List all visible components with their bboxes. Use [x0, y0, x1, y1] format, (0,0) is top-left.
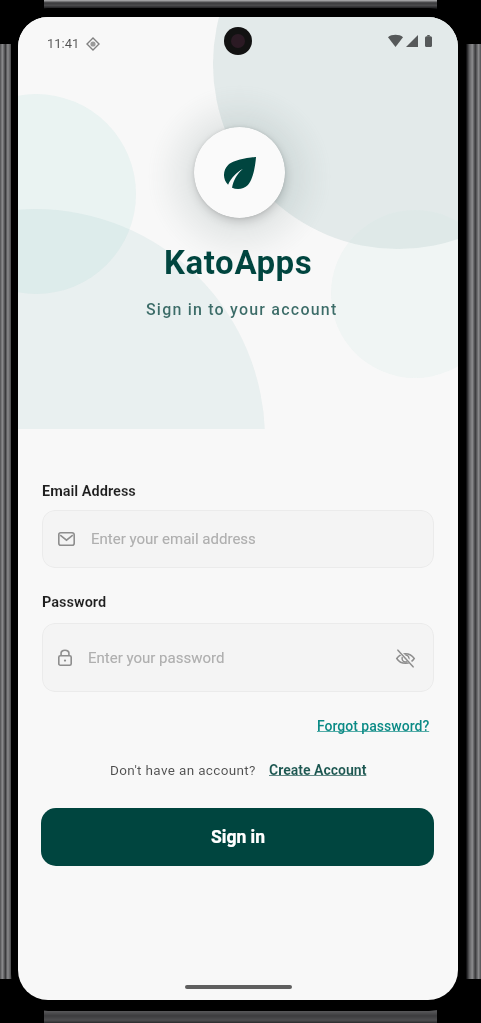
- staticText: 11:41: [47, 36, 80, 51]
- staticText: Create Account: [269, 762, 367, 778]
- staticText: Don't have an account?: [110, 762, 256, 778]
- staticText: Sign in: [211, 827, 265, 848]
- button[interactable]: Sign in: [41, 808, 434, 866]
- button[interactable]: Create Account: [269, 762, 367, 778]
- button[interactable]: Enter your password: [42, 623, 434, 692]
- staticText: Enter your email address: [91, 530, 256, 548]
- staticText: Enter your password: [88, 649, 225, 667]
- staticText: Email Address: [42, 483, 136, 500]
- button[interactable]: Forgot password?: [317, 718, 430, 734]
- staticText: KatoApps: [164, 243, 313, 282]
- button[interactable]: Show password: [392, 645, 418, 671]
- staticText: Password: [42, 594, 107, 611]
- button[interactable]: Enter your email address: [42, 510, 434, 568]
- staticText: Forgot password?: [317, 718, 430, 734]
- staticText: Sign in to your account: [146, 300, 338, 319]
